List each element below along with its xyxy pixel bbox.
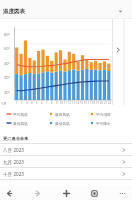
staticText: 11 [64,101,67,105]
staticText: 温度図表 [3,8,25,15]
staticText: 最低気温 [55,121,70,126]
staticText: 16 [84,101,87,105]
staticText: 5 [36,101,38,105]
staticText: 10 [60,101,63,105]
button[interactable]: Back [3,187,16,200]
staticText: 7 [46,101,48,105]
staticText: 八月 2023 [3,147,24,153]
staticText: 20° [4,90,11,95]
staticText: 8 [51,101,53,105]
staticText: 17 [88,101,91,105]
staticText: 平均気温 [13,112,28,117]
button[interactable]: 十月 2023 [0,168,132,179]
staticText: 1月 [1,101,7,106]
staticText: 22 [108,101,111,105]
button[interactable]: Scroll right [113,43,124,59]
staticText: 9 [56,101,58,105]
staticText: 13 [72,101,75,105]
staticText: 最高気温 [55,112,70,117]
button[interactable]: Menu [118,9,123,14]
staticText: 30° [4,75,11,80]
button[interactable]: Forward [31,187,44,200]
staticText: 更に過去未来 [3,136,29,141]
staticText: 十月 2023 [3,171,24,177]
button[interactable]: More [116,187,129,200]
staticText: 19 [96,101,99,105]
button[interactable]: Tabs [88,187,101,200]
staticText: 最低気温 [13,121,28,126]
staticText: 1 [16,101,18,105]
button[interactable]: New tab [60,187,73,200]
staticText: 平均湿度 [96,112,111,117]
staticText: 50° [4,46,11,51]
staticText: 20 [100,101,103,105]
staticText: 12 [68,101,71,105]
staticText: 4 [31,101,33,105]
button[interactable]: 九月 2023 [0,156,132,167]
button[interactable]: 八月 2023 [0,144,132,155]
staticText: 21 [104,101,107,105]
staticText: 2 [21,101,23,105]
staticText: 15 [80,101,83,105]
staticText: 40° [4,61,11,66]
staticText: 14 [76,101,79,105]
staticText: 6 [41,101,43,105]
staticText: 60° [4,32,11,37]
staticText: 平均降水 [96,121,111,126]
staticText: 18 [92,101,95,105]
staticText: 九月 2023 [3,159,24,165]
staticText: 3 [26,101,28,105]
